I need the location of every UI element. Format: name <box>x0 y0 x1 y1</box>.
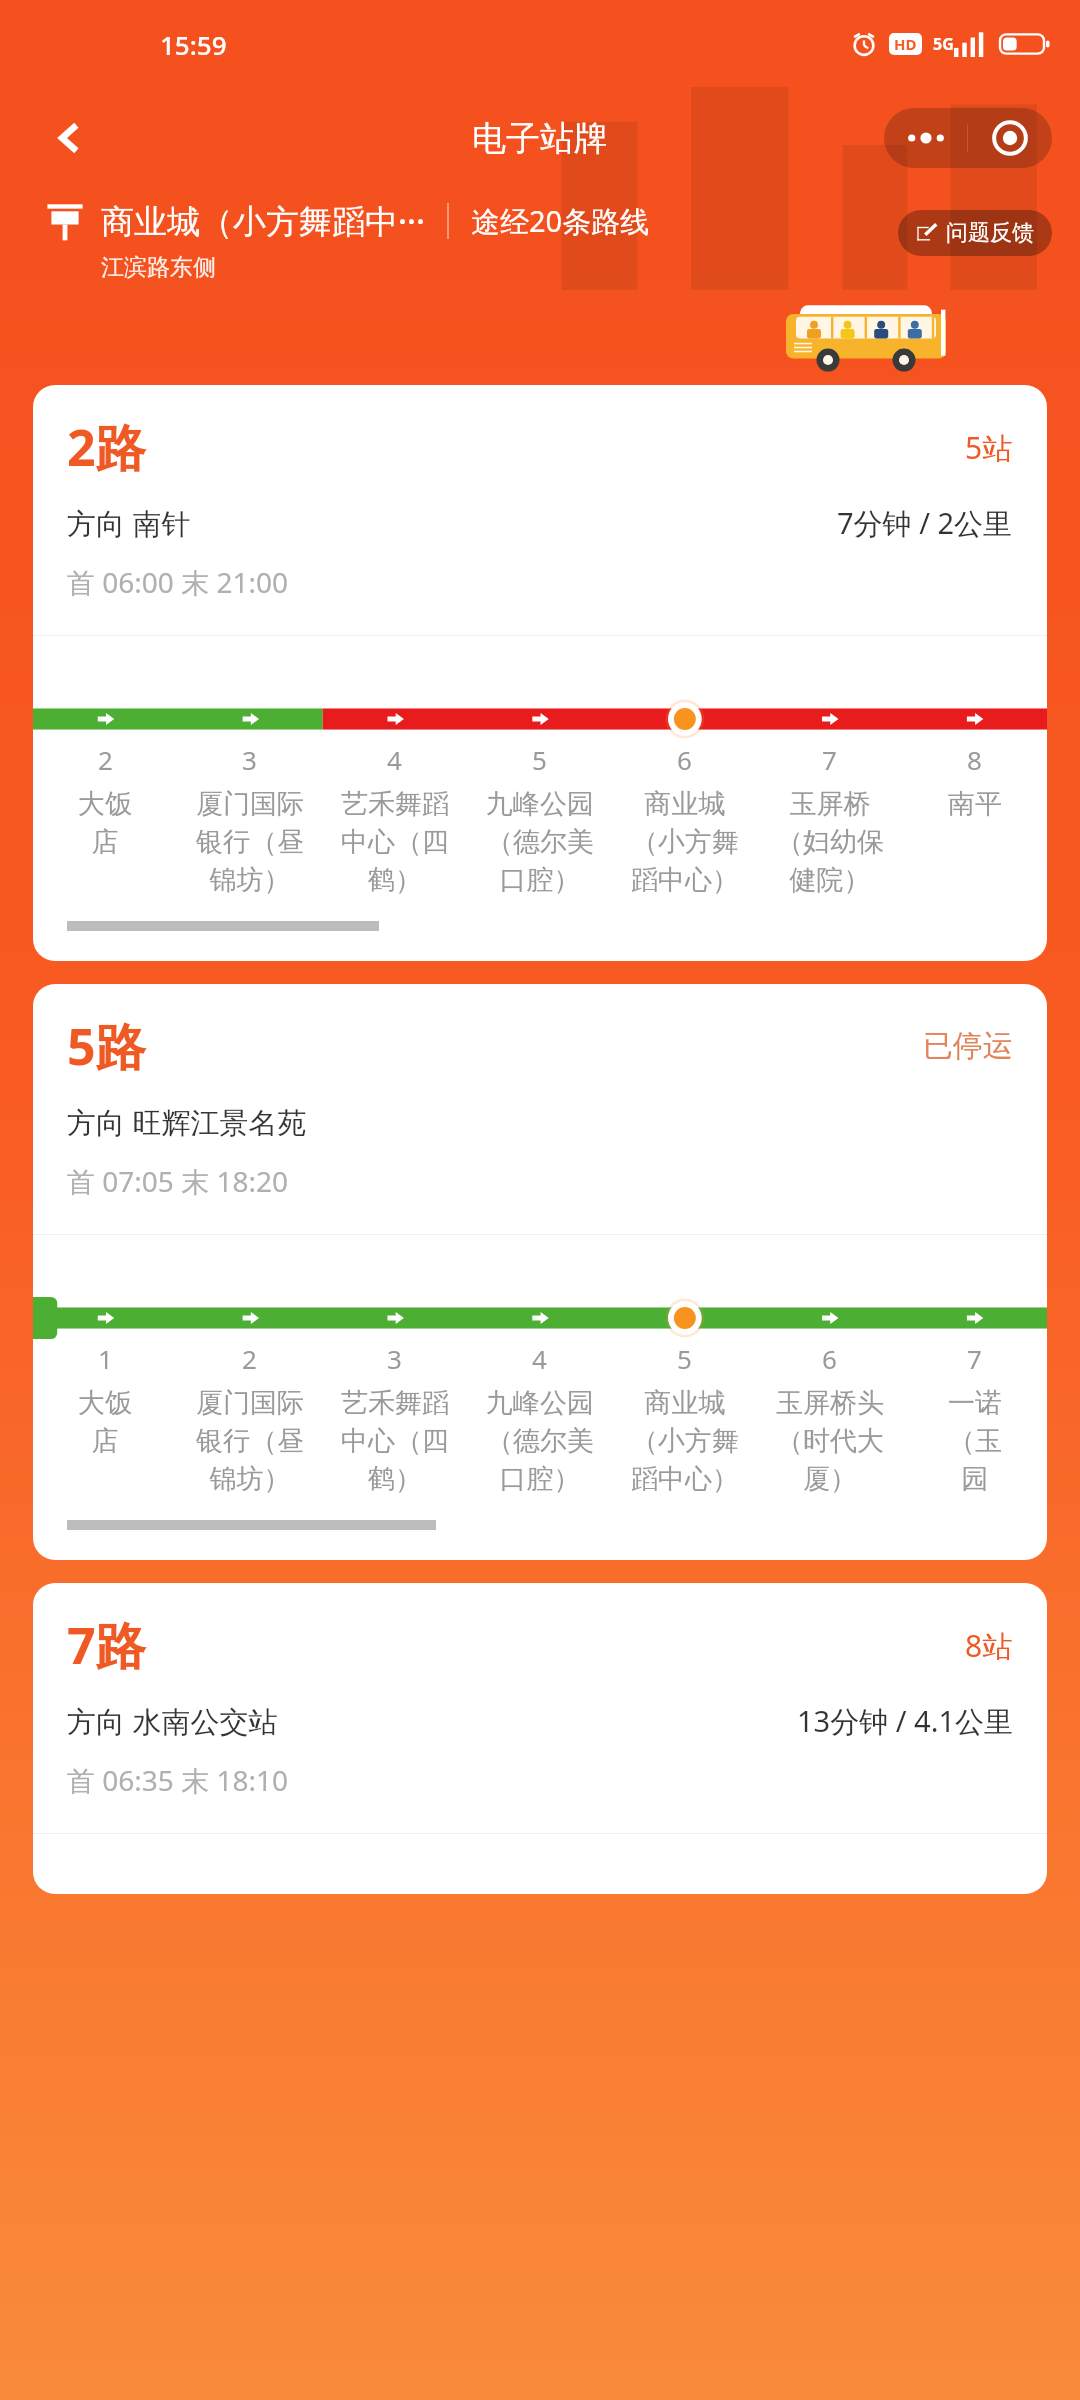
staticText: 方向 南针 <box>67 503 191 543</box>
staticText: 九峰公园 （德尔美 口腔） <box>486 1386 594 1496</box>
staticText: 大饭 店 <box>78 1386 132 1458</box>
staticText: 3 <box>387 1341 402 1376</box>
staticText: 5路 <box>67 1012 146 1080</box>
staticText: 大饭 店 <box>78 787 132 859</box>
button[interactable]: 5路 <box>33 984 1047 1560</box>
staticText: 途经20条路线 <box>471 201 650 241</box>
staticText: 江滨路东侧 <box>101 253 216 282</box>
staticText: 已停运 <box>923 1027 1013 1065</box>
staticText: 15:59 <box>160 27 227 62</box>
staticText: 1 <box>98 1341 113 1376</box>
staticText: 6 <box>677 742 692 777</box>
staticText: 4 <box>387 742 402 777</box>
staticText: 4 <box>532 1341 547 1376</box>
staticText: 5站 <box>965 427 1013 468</box>
button[interactable]: 2路 <box>33 385 1047 961</box>
staticText: 玉屏桥头 （时代大 厦） <box>776 1386 884 1496</box>
staticText: 方向 旺辉江景名苑 <box>67 1102 307 1142</box>
staticText: 3 <box>242 742 257 777</box>
staticText: 艺禾舞蹈 中心（四 鹤） <box>341 1386 449 1496</box>
staticText: 7路 <box>67 1611 146 1679</box>
staticText: 7 <box>967 1341 982 1376</box>
staticText: 首 06:35 末 18:10 <box>67 1761 288 1799</box>
button[interactable]: Back <box>42 110 98 166</box>
staticText: 6 <box>822 1341 837 1376</box>
staticText: 九峰公园 （德尔美 口腔） <box>486 787 594 897</box>
staticText: 方向 水南公交站 <box>67 1701 278 1741</box>
staticText: 7分钟 / 2公里 <box>837 503 1013 543</box>
staticText: 商业城（小方舞蹈中··· <box>101 198 425 243</box>
staticText: 8 <box>967 742 982 777</box>
staticText: 南平 <box>948 787 1002 821</box>
staticText: 厦门国际 银行（昼 锦坊） <box>196 1386 304 1496</box>
staticText: 问题反馈 <box>946 219 1034 247</box>
staticText: 2 <box>98 742 113 777</box>
staticText: HD <box>894 34 917 54</box>
button[interactable]: Record <box>968 108 1052 168</box>
staticText: 5 <box>677 1341 692 1376</box>
staticText: 5 <box>532 742 547 777</box>
button[interactable]: 7路 <box>33 1583 1047 1894</box>
staticText: 2 <box>242 1341 257 1376</box>
staticText: 艺禾舞蹈 中心（四 鹤） <box>341 787 449 897</box>
staticText: 5G <box>933 33 954 55</box>
staticText: 7 <box>822 742 837 777</box>
staticText: 商业城 （小方舞 蹈中心） <box>631 1386 739 1496</box>
staticText: 商业城 （小方舞 蹈中心） <box>631 787 739 897</box>
staticText: 2路 <box>67 413 146 481</box>
staticText: 一诺 （玉 园 <box>948 1386 1002 1496</box>
button[interactable]: More options <box>884 108 967 168</box>
staticText: 首 06:00 末 21:00 <box>67 563 288 601</box>
staticText: 8站 <box>965 1625 1013 1666</box>
staticText: 电子站牌 <box>472 117 608 160</box>
staticText: 13分钟 / 4.1公里 <box>797 1701 1013 1741</box>
staticText: 首 07:05 末 18:20 <box>67 1162 288 1200</box>
staticText: 厦门国际 银行（昼 锦坊） <box>196 787 304 897</box>
button[interactable]: 问题反馈 <box>916 219 1034 247</box>
staticText: 玉屏桥 （妇幼保 健院） <box>776 787 884 897</box>
